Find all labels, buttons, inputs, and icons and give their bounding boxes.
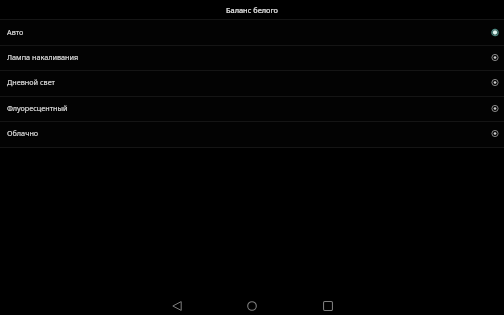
- button[interactable]: Баланс белого: [0, 0, 504, 19]
- staticText: Баланс белого: [226, 5, 278, 15]
- button[interactable]: Авто: [0, 20, 504, 45]
- button[interactable]: Лампа накаливания: [0, 45, 504, 70]
- button[interactable]: Дневной свет: [0, 70, 504, 96]
- button[interactable]: Home: [238, 292, 266, 315]
- button[interactable]: Back: [163, 292, 191, 315]
- button[interactable]: Recent apps: [314, 292, 342, 315]
- staticText: Облачно: [7, 128, 39, 138]
- button[interactable]: Облачно: [0, 121, 504, 147]
- staticText: Лампа накаливания: [7, 52, 79, 62]
- staticText: Флуоресцентный: [7, 103, 68, 113]
- staticText: Авто: [7, 27, 24, 37]
- button[interactable]: Флуоресцентный: [0, 96, 504, 121]
- staticText: Дневной свет: [7, 77, 55, 87]
